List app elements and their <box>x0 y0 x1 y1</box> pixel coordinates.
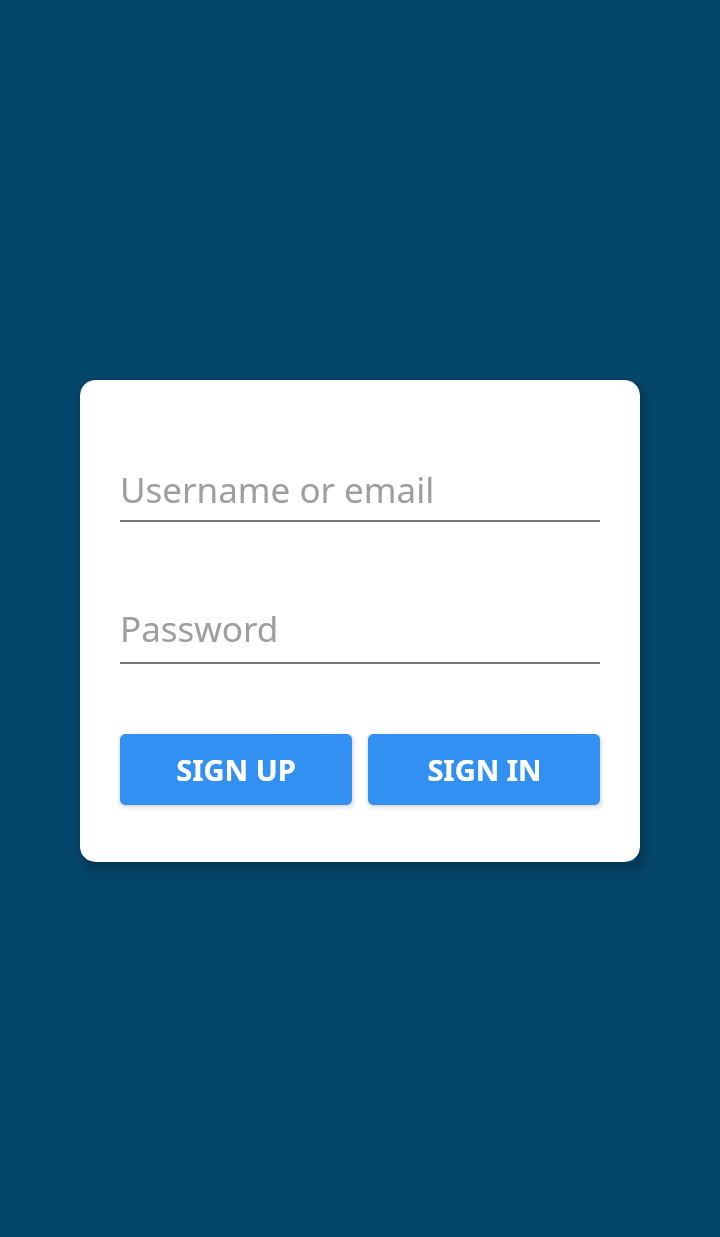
staticText: Password <box>120 605 279 653</box>
button[interactable]: Username or email <box>120 466 600 514</box>
button[interactable]: SIGN UP <box>120 734 352 805</box>
staticText: SIGN IN <box>427 750 542 789</box>
button[interactable]: SIGN IN <box>368 734 600 805</box>
staticText: SIGN UP <box>176 750 296 789</box>
button[interactable]: Password <box>120 605 600 653</box>
staticText: Username or email <box>120 466 435 514</box>
